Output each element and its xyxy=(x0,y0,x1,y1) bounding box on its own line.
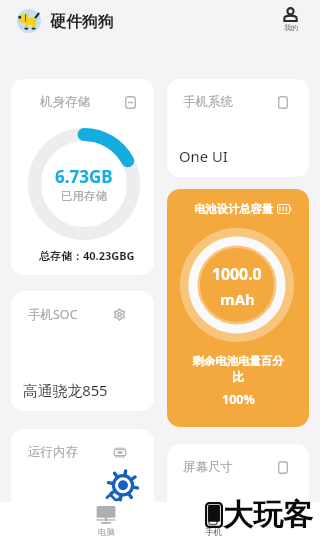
staticText: 电池设计总容量 xyxy=(194,202,274,216)
button[interactable]: 手机SOC xyxy=(11,291,154,411)
staticText: 硬件狗狗 xyxy=(50,12,114,32)
button[interactable]: 机身存储 xyxy=(11,79,154,275)
staticText: 手机SOC xyxy=(28,306,78,323)
button[interactable]: 运行内存 xyxy=(11,429,154,538)
staticText: 1000.0 xyxy=(212,263,262,285)
button[interactable]: 电脑 xyxy=(84,504,128,538)
button[interactable]: 设置 xyxy=(107,473,139,501)
staticText: 屏幕尺寸 xyxy=(183,459,233,475)
staticText: 电脑 xyxy=(98,527,115,538)
staticText: 剩余电池电量百分比 xyxy=(191,354,285,385)
button[interactable]: 手机系统 xyxy=(167,79,309,177)
staticText: 100% xyxy=(222,391,255,408)
staticText: 总存储：40.23GBG xyxy=(39,248,135,263)
staticText: 我的 xyxy=(284,23,298,32)
button[interactable]: 电池设计总容量 xyxy=(167,189,309,427)
staticText: 机身存储 xyxy=(40,94,90,110)
staticText: 6.73GB xyxy=(55,165,113,188)
button[interactable]: 我的 xyxy=(276,6,305,34)
staticText: 高通骁龙855 xyxy=(23,380,108,400)
staticText: mAh xyxy=(220,289,255,309)
staticText: One UI xyxy=(179,146,228,166)
staticText: 大玩客 xyxy=(223,496,313,534)
button[interactable]: 手机 xyxy=(191,504,235,538)
staticText: 运行内存 xyxy=(28,444,78,460)
staticText: 手机系统 xyxy=(183,94,233,110)
button[interactable]: 屏幕尺寸 xyxy=(167,444,309,538)
staticText: 手机 xyxy=(205,527,222,538)
staticText: 已用存储 xyxy=(61,189,107,203)
